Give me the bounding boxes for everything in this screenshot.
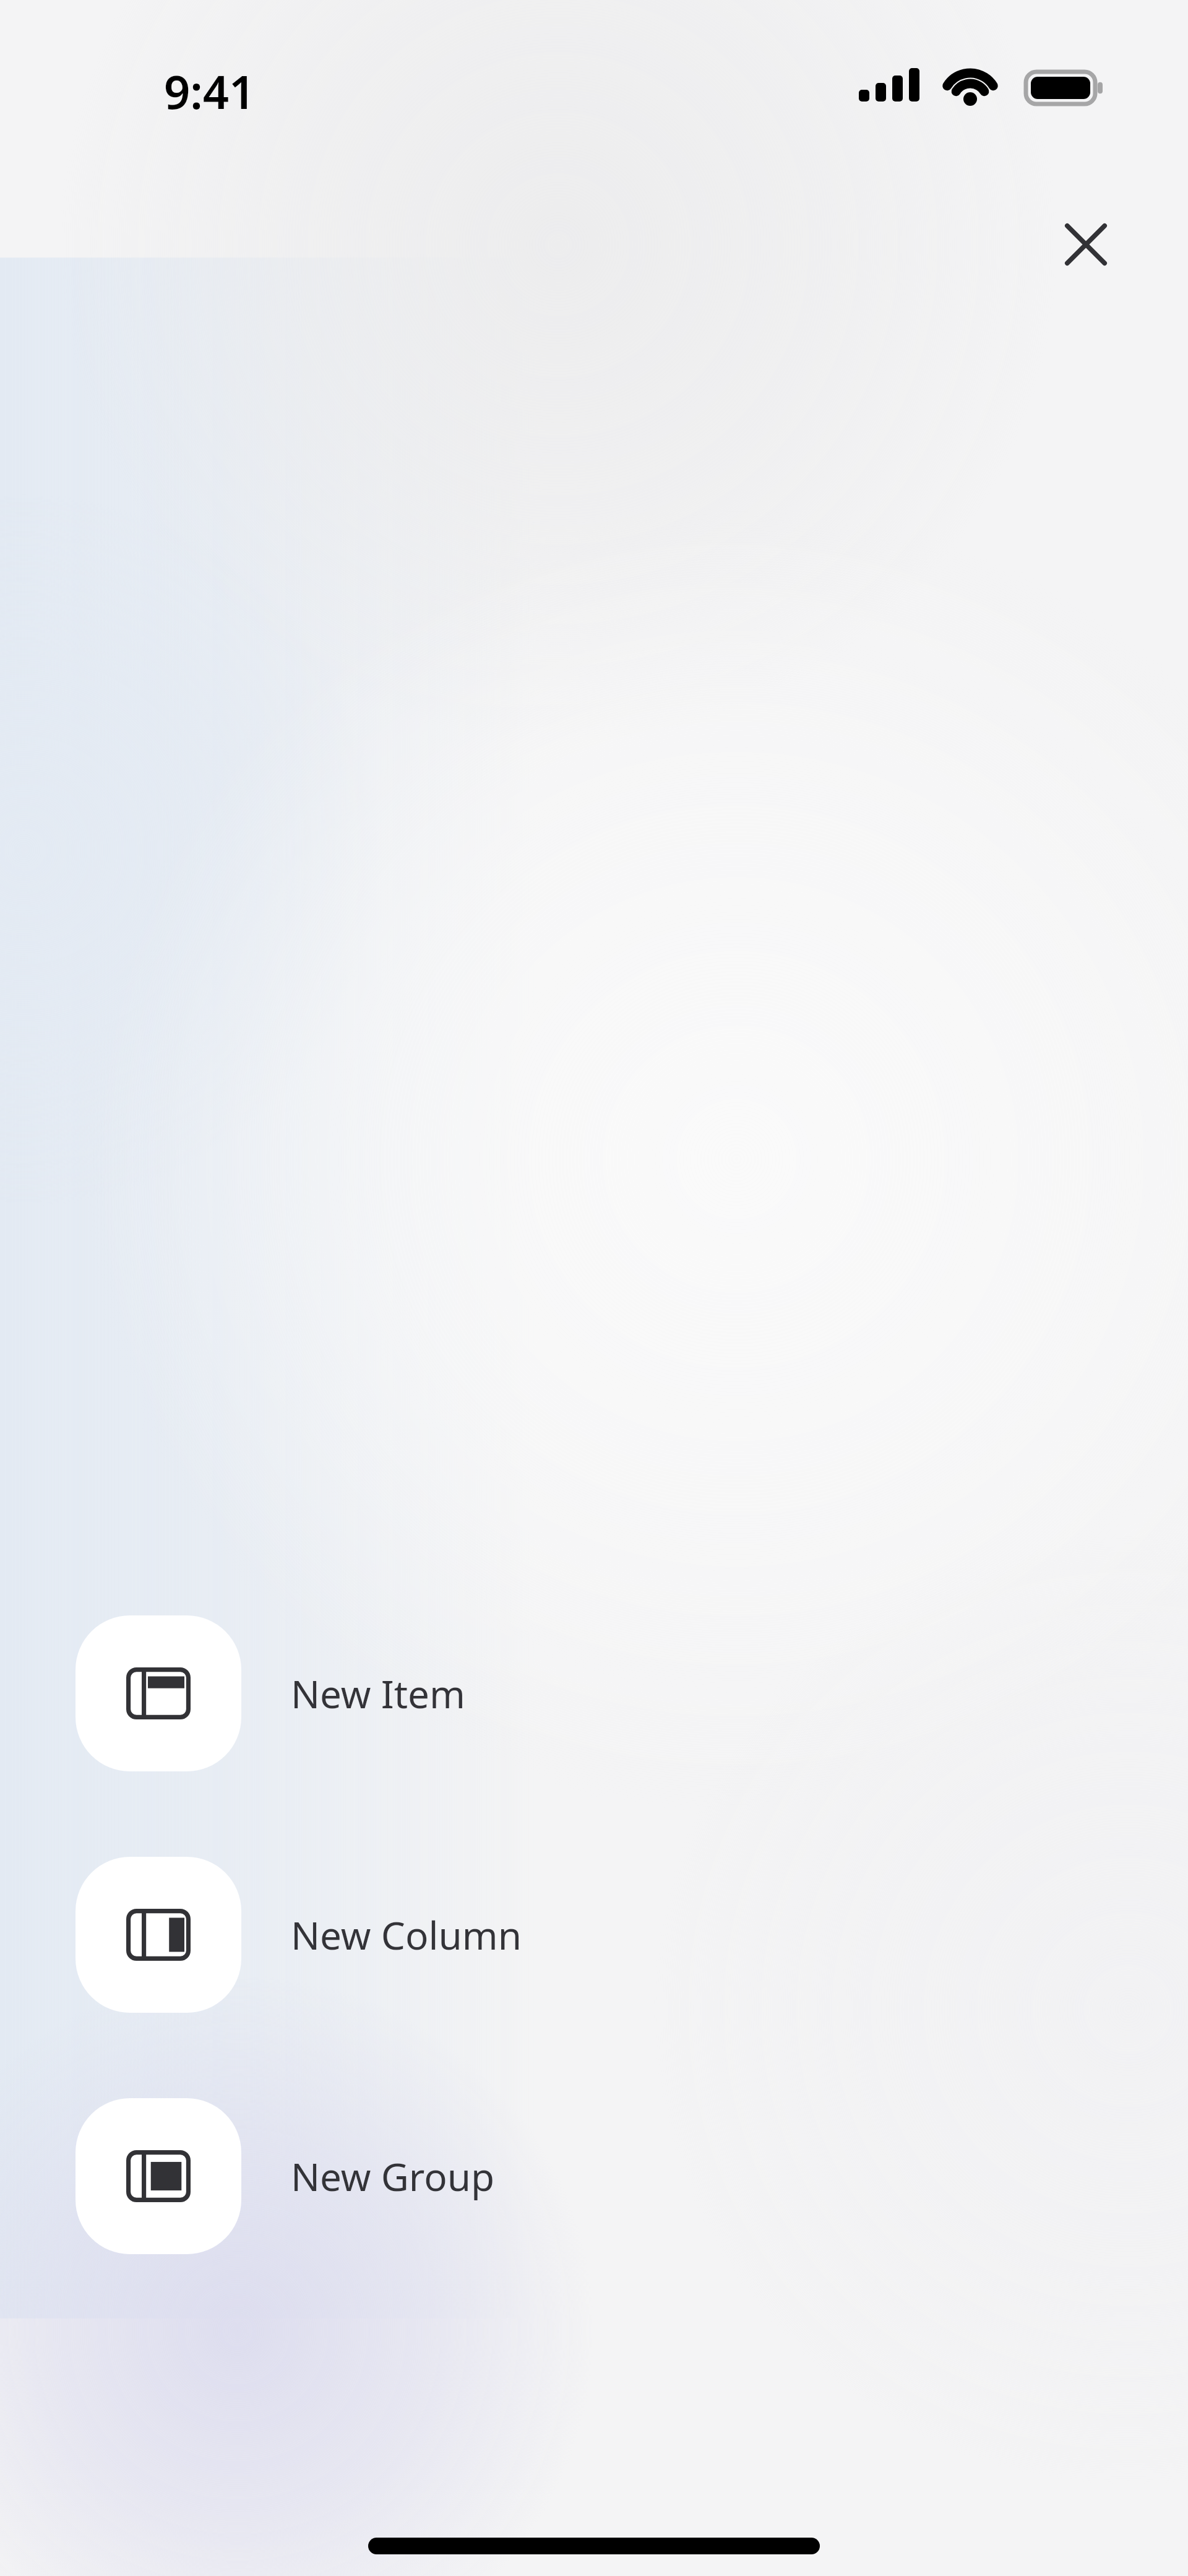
button[interactable]: Close (1024, 183, 1148, 306)
staticText: New Group (291, 2150, 495, 2202)
staticText: 9:41 (164, 60, 256, 122)
button[interactable]: New Item (75, 1615, 756, 1771)
staticText: New Item (291, 1667, 466, 1719)
button[interactable]: New Group (75, 2098, 756, 2254)
button[interactable]: New Column (75, 1857, 756, 2013)
staticText: New Column (291, 1909, 522, 1961)
